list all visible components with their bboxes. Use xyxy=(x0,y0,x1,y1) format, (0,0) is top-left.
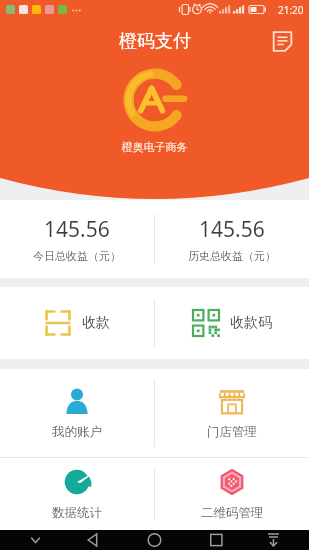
button[interactable]: 二维码管理 xyxy=(155,458,309,530)
button[interactable]: 收款码 xyxy=(155,287,309,359)
staticText: 我的账户 xyxy=(52,424,102,440)
button[interactable]: 数据统计 xyxy=(0,458,154,530)
staticText: 21:20 xyxy=(278,3,304,17)
button[interactable]: 145.56 xyxy=(0,200,154,278)
button[interactable]: 门店管理 xyxy=(155,369,309,457)
staticText: 橙奥电子商务 xyxy=(0,140,309,154)
staticText: 数据统计 xyxy=(52,505,102,521)
staticText: 145.56 xyxy=(44,215,110,244)
button[interactable]: Notes xyxy=(265,24,299,58)
staticText: 145.56 xyxy=(199,215,265,244)
button[interactable]: 我的账户 xyxy=(0,369,154,457)
staticText: 门店管理 xyxy=(207,424,257,440)
staticText: 今日总收益（元） xyxy=(33,249,121,263)
staticText: 收款 xyxy=(82,314,110,332)
staticText: 二维码管理 xyxy=(201,505,264,521)
staticText: 历史总收益（元） xyxy=(188,249,276,263)
staticText: 橙码支付 xyxy=(119,30,191,53)
button[interactable]: 收款 xyxy=(0,287,154,359)
button[interactable]: 145.56 xyxy=(155,200,309,278)
staticText: 收款码 xyxy=(230,314,272,332)
